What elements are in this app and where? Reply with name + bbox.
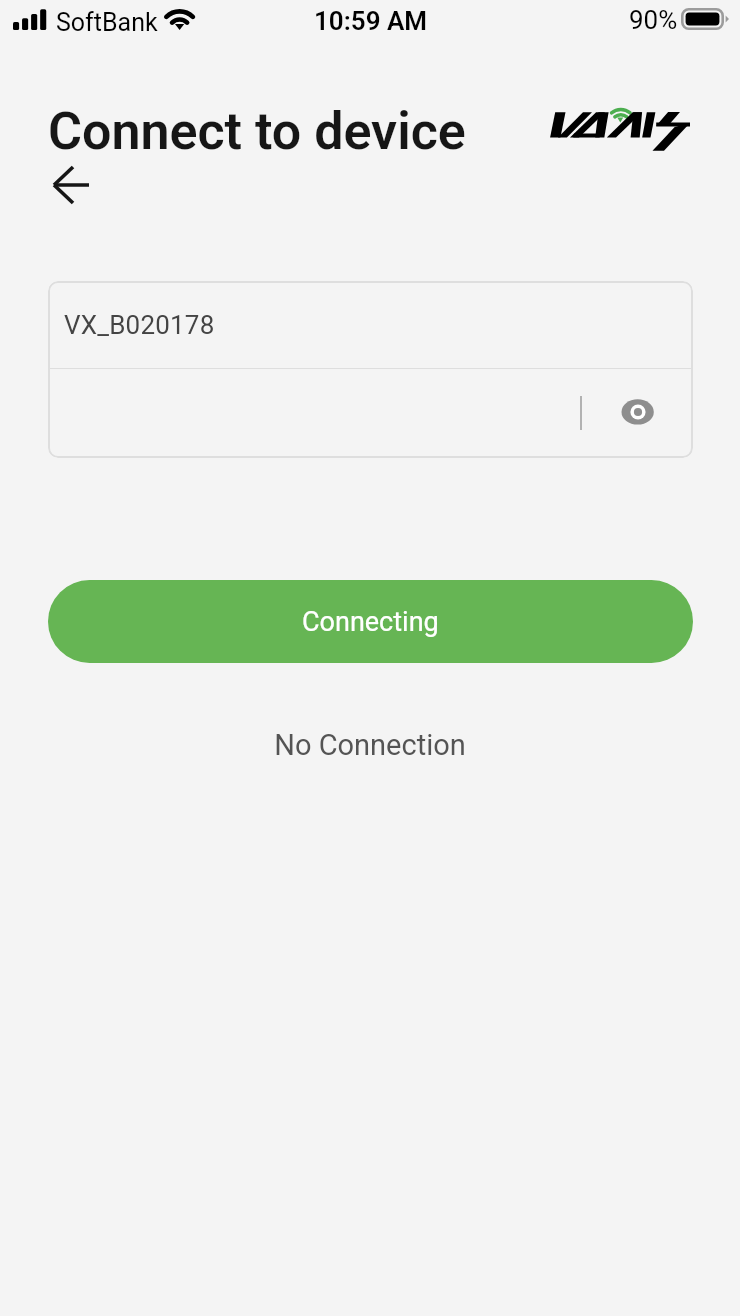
staticText: Connecting xyxy=(302,606,439,638)
staticText: SoftBank xyxy=(56,8,158,37)
staticText: 90% xyxy=(629,5,678,35)
button[interactable]: VX_B020178 xyxy=(48,281,693,368)
staticText: Connect to device xyxy=(48,101,466,162)
button[interactable]: Back xyxy=(38,156,108,214)
button[interactable]: Show password xyxy=(48,369,693,458)
staticText: 10:59 AM xyxy=(314,6,428,36)
button[interactable]: Connecting xyxy=(48,580,693,663)
staticText: No Connection xyxy=(274,728,466,762)
button[interactable]: Show password xyxy=(607,384,667,440)
staticText: VX_B020178 xyxy=(64,310,215,340)
